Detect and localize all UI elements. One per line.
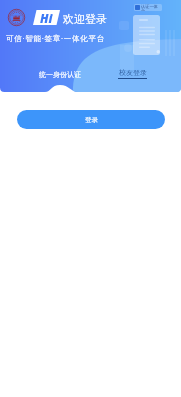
staticText: 登录 [85, 116, 98, 124]
staticText: 欢迎登录 [63, 12, 107, 26]
other: 学校校徽 [8, 9, 25, 26]
staticText: 校友登录 [119, 68, 147, 77]
staticText: 认证一体化 [141, 4, 161, 11]
staticText: 可信·智能·签章·一体化平台 [6, 33, 106, 43]
staticText: Hi [40, 10, 53, 25]
staticText: 统一身份认证 [39, 70, 81, 79]
button[interactable]: 统一身份认证 [30, 68, 89, 80]
button[interactable]: 校友登录 [110, 68, 155, 82]
button[interactable]: 登录 [17, 110, 165, 129]
